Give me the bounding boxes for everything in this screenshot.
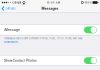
button[interactable]: Show Contact Photos bbox=[0, 56, 100, 66]
staticText: Settings bbox=[5, 7, 15, 10]
staticText: Learn More... bbox=[4, 41, 20, 44]
button[interactable]: iMessage bbox=[0, 25, 100, 35]
staticText: iMessage bbox=[4, 28, 20, 32]
staticText: 10:34 AM bbox=[47, 1, 60, 4]
button[interactable]: Learn More... bbox=[4, 41, 20, 44]
button[interactable]: Settings bbox=[0, 5, 17, 12]
staticText: Cellular bbox=[11, 1, 21, 4]
staticText: Show Contact Photos bbox=[4, 59, 37, 62]
staticText: 100% bbox=[84, 1, 93, 4]
staticText: iMessages can be sent between iPhone, iP… bbox=[4, 37, 83, 40]
staticText: Messages bbox=[41, 7, 58, 10]
